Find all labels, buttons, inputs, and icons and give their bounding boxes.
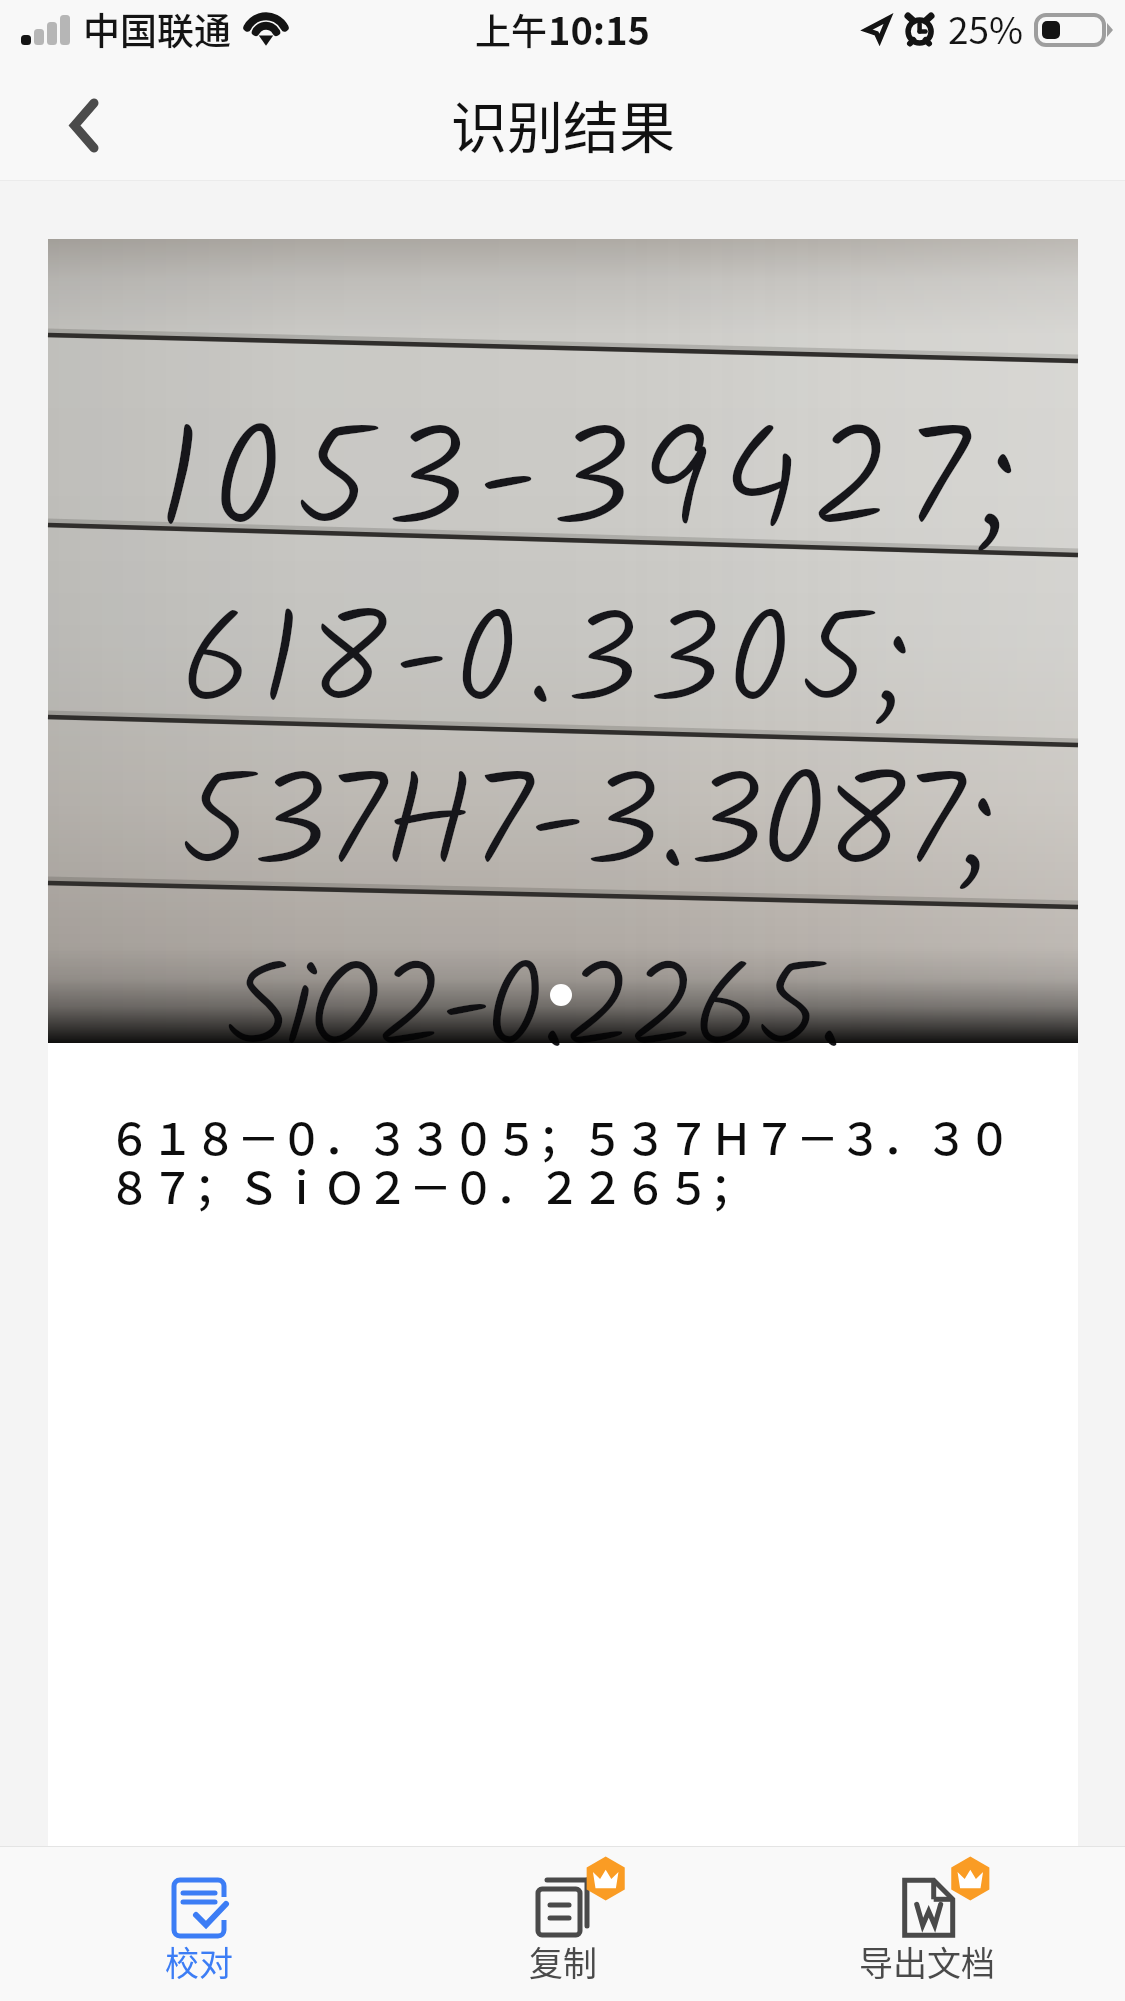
button[interactable]: 返回 bbox=[0, 70, 160, 181]
staticText: 25% bbox=[948, 1, 1024, 55]
staticText: 中国联通 bbox=[83, 2, 231, 56]
button[interactable]: 导出文档 bbox=[745, 1847, 1109, 2001]
staticText: SiO2-0.2265. bbox=[228, 917, 840, 1108]
staticText: 1053-39427; bbox=[156, 374, 1034, 600]
staticText: 537H7-3.3087; bbox=[178, 723, 999, 937]
staticText: 识别结果 bbox=[451, 83, 675, 164]
staticText: 上午 bbox=[475, 3, 548, 55]
staticText: 618-0.3305; bbox=[180, 564, 924, 770]
staticText: 复制 bbox=[529, 1937, 597, 1986]
button[interactable]: 复制 bbox=[381, 1847, 745, 2001]
staticText: 导出文档 bbox=[859, 1937, 995, 1986]
staticText: ６１８－０．３３０５；５３７Ｈ７－３．３０８７；ＳｉＯ２－０．２２６５； bbox=[108, 1105, 1016, 1217]
button[interactable]: 查看原图 bbox=[48, 239, 1078, 1043]
staticText: 校对 bbox=[165, 1937, 233, 1986]
button[interactable]: 校对 bbox=[16, 1847, 381, 2001]
staticText: 10:15 bbox=[548, 1, 651, 56]
